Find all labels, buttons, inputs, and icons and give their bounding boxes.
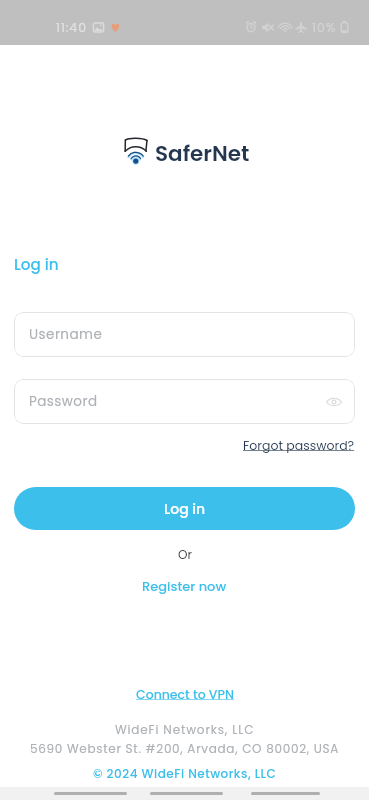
staticText: SaferNet <box>155 138 250 168</box>
other: Show password <box>326 394 342 410</box>
staticText: Or <box>178 546 192 563</box>
button[interactable]: Navigation button <box>54 792 127 795</box>
button[interactable]: Username <box>14 312 355 357</box>
staticText: Register now <box>142 577 227 595</box>
button[interactable]: Navigation button <box>251 792 320 795</box>
staticText: Password <box>29 392 98 411</box>
button[interactable]: Password <box>14 379 355 424</box>
staticText: Log in <box>14 254 59 275</box>
staticText: 11:40 <box>56 19 87 36</box>
button[interactable]: Register now <box>142 577 227 595</box>
staticText: © 2024 WideFi Networks, LLC <box>93 765 277 782</box>
staticText: 10% <box>312 19 337 36</box>
button[interactable]: Forgot password? <box>243 437 355 454</box>
staticText: Log in <box>164 499 206 519</box>
staticText: Forgot password? <box>243 437 355 454</box>
button[interactable]: Log in <box>14 487 355 530</box>
button[interactable]: Navigation button <box>150 792 223 795</box>
staticText: WideFi Networks, LLC <box>115 721 255 738</box>
button[interactable]: Connect to VPN <box>136 686 234 703</box>
staticText: 5690 Webster St. #200, Arvada, CO 80002,… <box>30 740 340 757</box>
button: Log in <box>14 254 59 275</box>
staticText: Connect to VPN <box>136 686 234 703</box>
staticText: Username <box>29 325 103 344</box>
